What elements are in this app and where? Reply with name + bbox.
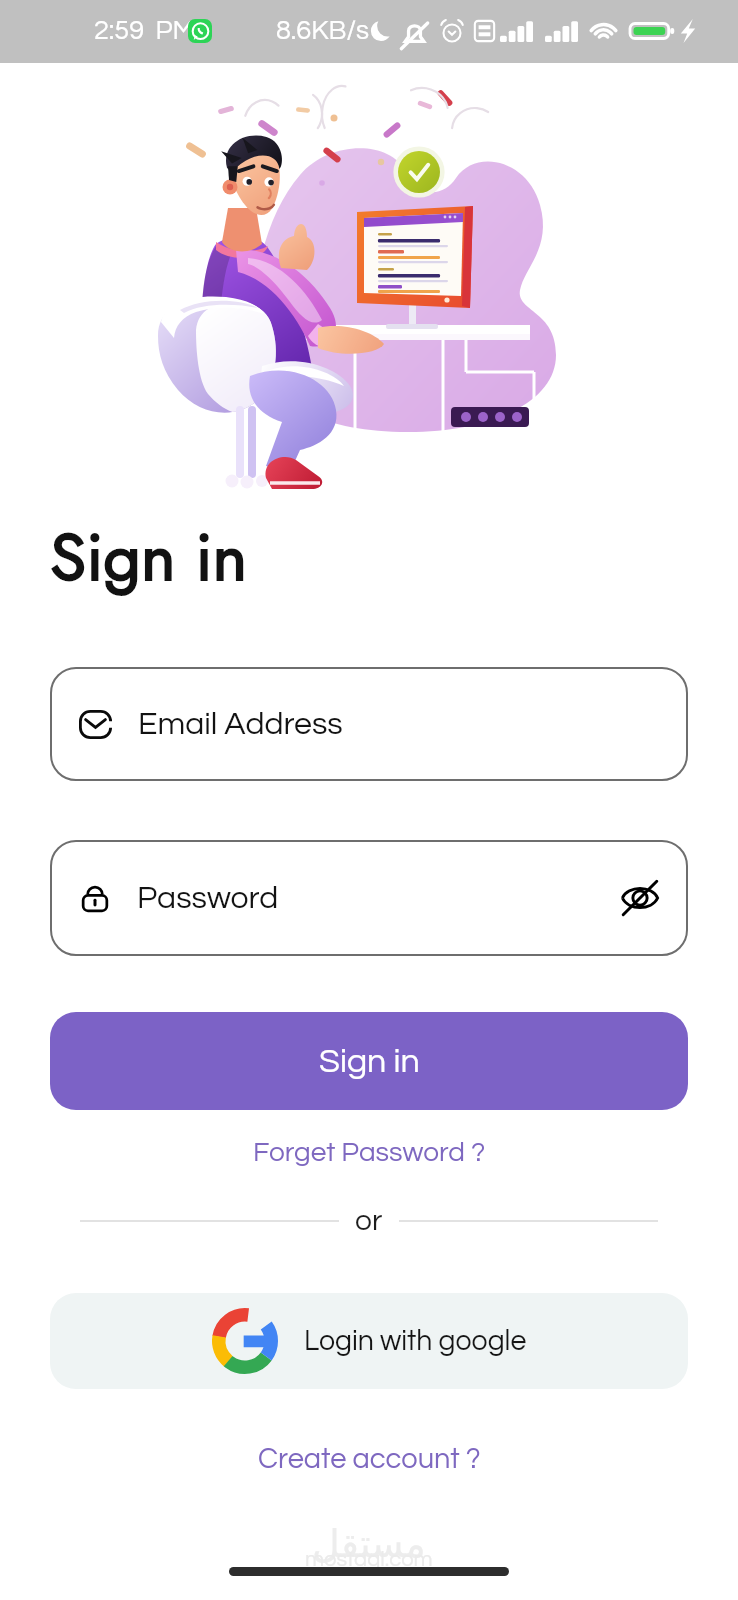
staticText: 2:59 PM — [94, 17, 195, 45]
staticText: مستقل — [312, 1522, 426, 1566]
staticText: Password — [137, 882, 279, 915]
button[interactable]: Sign in — [50, 1012, 688, 1110]
staticText: 8.6KB/s — [276, 17, 370, 45]
staticText: or — [355, 1205, 383, 1236]
staticText: Email Address — [138, 708, 343, 741]
button[interactable]: Show password — [616, 874, 664, 922]
button[interactable]: Forget Password ? — [239, 1130, 500, 1175]
button[interactable]: Create account ? — [244, 1436, 495, 1482]
staticText: mostaql.com — [305, 1548, 433, 1571]
button[interactable]: Password — [50, 840, 688, 956]
button[interactable]: Email Address — [50, 667, 688, 781]
staticText: Sign in — [50, 509, 248, 604]
button[interactable]: Login with google — [50, 1293, 688, 1389]
staticText: Login with google — [304, 1327, 527, 1356]
staticText: Sign in — [319, 1044, 420, 1079]
